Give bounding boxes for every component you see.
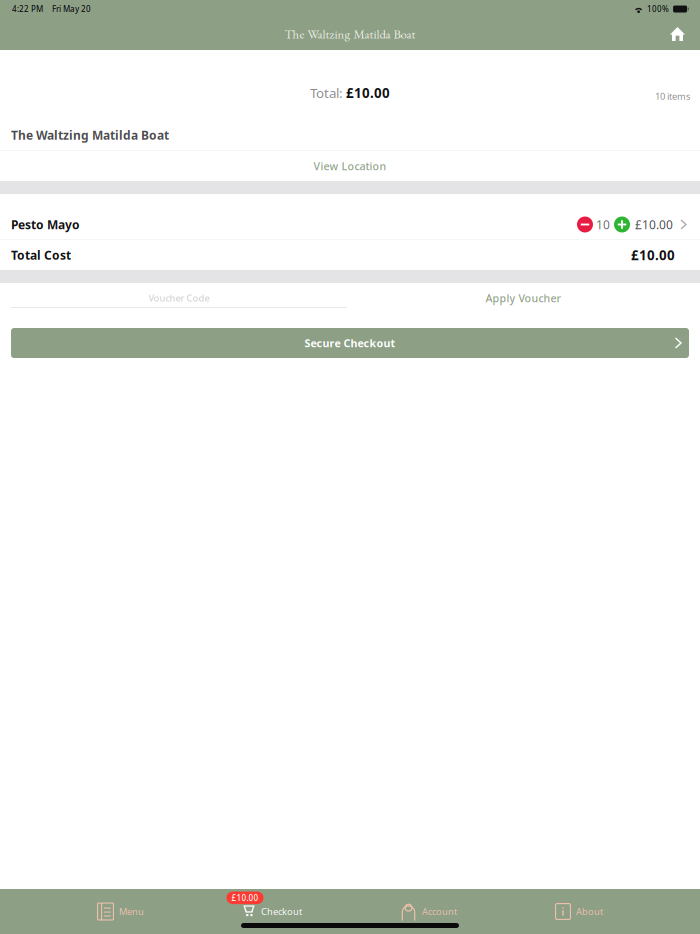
staticText: Apply Voucher [485, 291, 561, 305]
button[interactable]: Account [400, 889, 457, 934]
staticText: Total Cost [11, 247, 71, 263]
staticText: Voucher Code [148, 292, 209, 304]
staticText: £10.00 [635, 216, 673, 232]
staticText: Fri May 20 [52, 4, 91, 14]
button[interactable]: Secure Checkout [0, 313, 700, 358]
staticText: Checkout [261, 905, 302, 918]
staticText: 100% [647, 4, 669, 14]
staticText: Account [422, 905, 457, 918]
staticText: The Waltzing Matilda Boat [284, 26, 415, 42]
staticText: Secure Checkout [304, 336, 395, 350]
staticText: £10.00 [631, 246, 675, 264]
staticText: 10 [596, 216, 610, 232]
button[interactable]: £10.00 [242, 889, 302, 934]
staticText: Menu [119, 905, 144, 918]
button[interactable]: View Location [0, 151, 700, 181]
button[interactable]: Home [664, 21, 691, 47]
button[interactable]: Menu [97, 889, 144, 934]
staticText: Total: [310, 84, 346, 102]
button[interactable]: Apply Voucher [347, 283, 700, 313]
staticText: Pesto Mayo [11, 216, 80, 232]
staticText: £10.00 [346, 84, 390, 102]
staticText: 10 items [655, 90, 690, 102]
staticText: £10.00 [231, 892, 258, 903]
button[interactable]: Pesto Mayo [0, 210, 700, 239]
staticText: View Location [313, 159, 386, 173]
staticText: About [576, 905, 603, 918]
button[interactable]: About [555, 889, 603, 934]
staticText: 4:22 PM [12, 4, 43, 14]
staticText: The Waltzing Matilda Boat [11, 127, 169, 143]
